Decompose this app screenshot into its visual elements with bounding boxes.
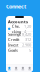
button[interactable]: Tab 1	[6, 67, 13, 70]
staticText: 8,420	[22, 31, 31, 37]
button[interactable]: Goals	[6, 48, 33, 53]
staticText: Invest	[8, 42, 18, 47]
staticText: 1,204	[24, 23, 31, 34]
button[interactable]: Tab 4	[26, 67, 33, 70]
staticText: 5	[29, 48, 31, 53]
staticText: Accounts	[8, 19, 28, 24]
staticText: Savings	[8, 31, 21, 37]
button[interactable]: Tab 2	[13, 67, 20, 70]
staticText: 2,900	[22, 42, 31, 47]
button[interactable]: Tab 3	[19, 67, 26, 70]
button[interactable]: Invest	[6, 42, 33, 47]
staticText: Checking	[12, 23, 21, 34]
staticText: 312	[25, 37, 31, 42]
button[interactable]: Credit	[6, 37, 33, 42]
button[interactable]: Savings	[6, 32, 33, 37]
staticText: Connect	[6, 3, 26, 10]
button[interactable]: Checking	[6, 26, 33, 31]
staticText: Credit	[8, 37, 19, 42]
staticText: Goals	[8, 48, 18, 53]
